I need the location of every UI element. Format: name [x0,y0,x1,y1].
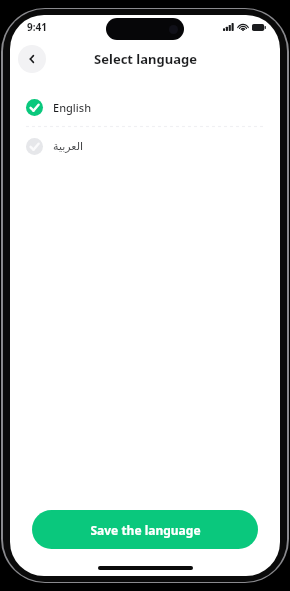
button[interactable]: English [10,89,280,125]
staticText: العربية [53,140,84,153]
staticText: English [53,100,92,115]
button[interactable]: العربية [10,128,280,164]
staticText: Select language [94,50,197,68]
button[interactable]: Save the language [32,510,258,549]
staticText: Save the language [90,522,201,538]
staticText: 9:41 [27,20,47,34]
button[interactable]: Back [18,45,46,73]
